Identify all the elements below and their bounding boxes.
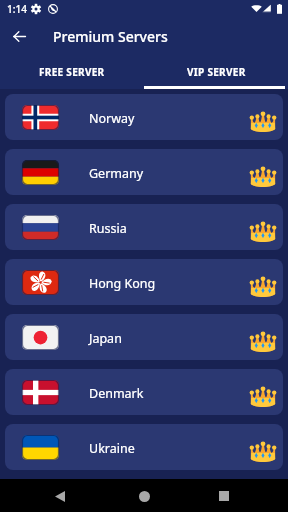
button[interactable]: Back bbox=[0, 17, 39, 55]
button[interactable]: Recents bbox=[208, 480, 240, 512]
button[interactable]: Japan bbox=[5, 314, 283, 360]
staticText: VIP SERVER bbox=[187, 65, 246, 79]
button[interactable]: Russia bbox=[5, 204, 283, 250]
button[interactable]: VIP SERVER bbox=[144, 55, 288, 89]
button[interactable]: Denmark bbox=[5, 369, 283, 415]
button[interactable]: Norway bbox=[5, 94, 283, 140]
staticText: Denmark bbox=[89, 385, 144, 402]
staticText: 1:14 bbox=[7, 2, 27, 16]
staticText: Norway bbox=[89, 110, 135, 127]
staticText: Japan bbox=[89, 330, 122, 347]
staticText: Premium Servers bbox=[53, 27, 168, 46]
button[interactable]: Home bbox=[128, 480, 160, 512]
button[interactable]: Ukraine bbox=[5, 424, 283, 470]
button[interactable]: Hong Kong bbox=[5, 259, 283, 305]
staticText: Hong Kong bbox=[89, 275, 156, 292]
staticText: FREE SERVER bbox=[39, 65, 105, 79]
staticText: Ukraine bbox=[89, 440, 135, 457]
button[interactable]: FREE SERVER bbox=[0, 55, 144, 89]
button[interactable]: Germany bbox=[5, 149, 283, 195]
staticText: Germany bbox=[89, 165, 144, 182]
button[interactable]: Back bbox=[44, 480, 76, 512]
staticText: Russia bbox=[89, 220, 127, 237]
